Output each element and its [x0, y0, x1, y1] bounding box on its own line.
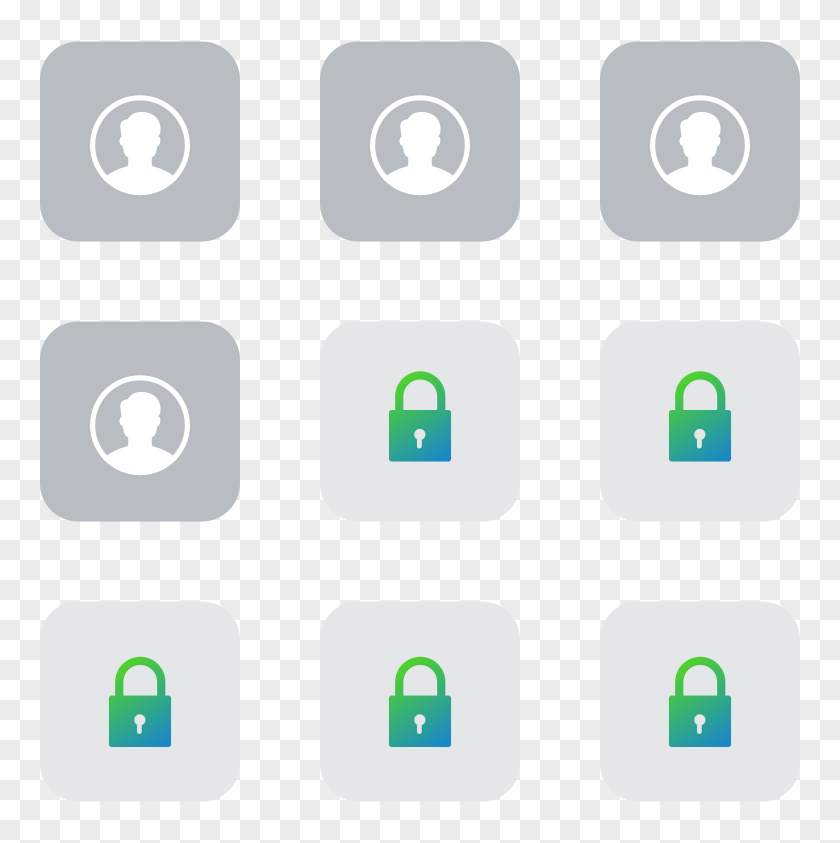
button[interactable]: Account — [320, 41, 520, 241]
button[interactable]: Account — [600, 41, 800, 241]
button[interactable]: Account — [40, 41, 240, 241]
button[interactable]: Locked — [320, 321, 520, 521]
button[interactable]: Locked — [600, 601, 800, 801]
button[interactable]: Locked — [40, 601, 240, 801]
button[interactable]: Locked — [320, 601, 520, 801]
button[interactable]: Account — [40, 321, 240, 521]
button[interactable]: Locked — [600, 321, 800, 521]
